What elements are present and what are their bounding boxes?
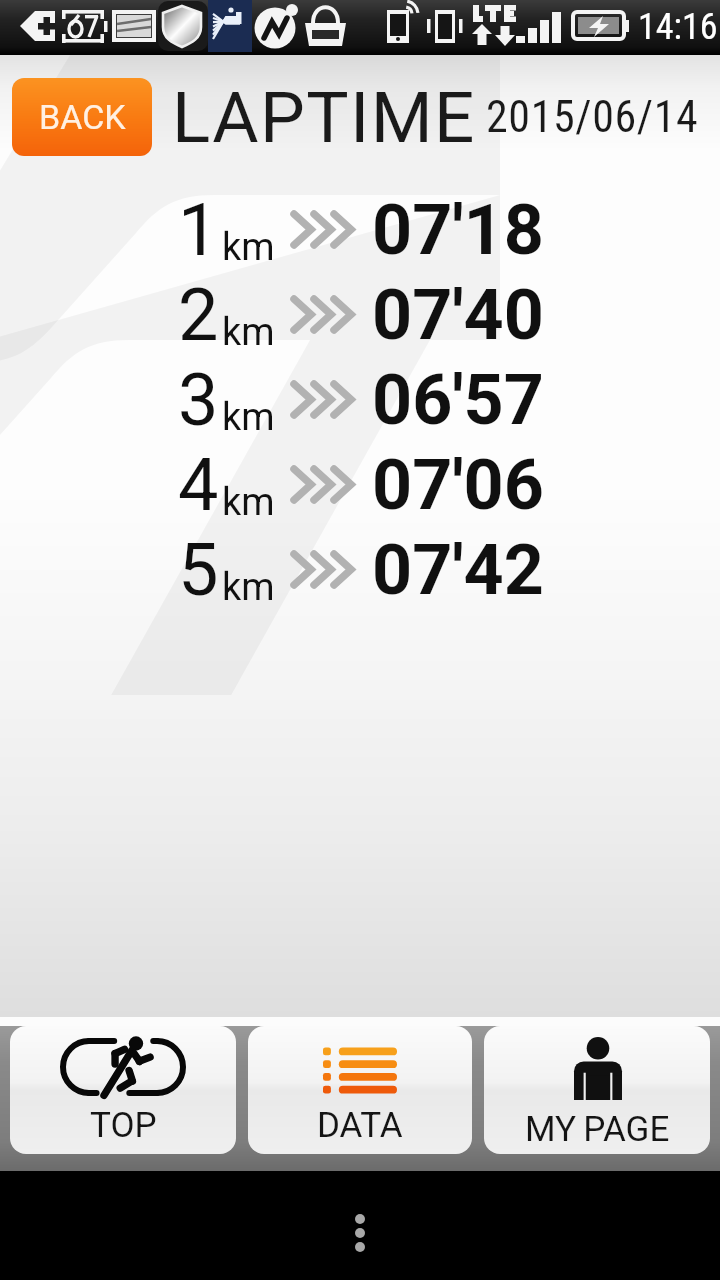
- staticText: BACK: [39, 97, 126, 137]
- staticText: 2015/06/14: [486, 91, 699, 143]
- staticText: 1: [178, 188, 219, 272]
- staticText: km: [222, 310, 275, 355]
- button[interactable]: MY PAGE: [484, 1026, 710, 1154]
- staticText: km: [222, 480, 275, 525]
- staticText: 07'06: [372, 444, 544, 526]
- button[interactable]: DATA: [248, 1026, 472, 1154]
- staticText: TOP: [90, 1105, 157, 1146]
- staticText: 07'40: [372, 274, 544, 356]
- button[interactable]: BACK: [12, 78, 152, 156]
- staticText: 06'57: [372, 359, 544, 441]
- staticText: km: [222, 225, 275, 270]
- staticText: km: [222, 565, 275, 610]
- button[interactable]: 3: [0, 357, 720, 442]
- button[interactable]: 2: [0, 272, 720, 357]
- staticText: 2: [178, 273, 219, 357]
- staticText: LAPTIME: [172, 76, 476, 159]
- staticText: 3: [178, 358, 219, 442]
- staticText: DATA: [317, 1105, 403, 1146]
- button[interactable]: 5: [0, 527, 720, 612]
- button[interactable]: 4: [0, 442, 720, 527]
- staticText: 4: [178, 443, 219, 527]
- staticText: 07'18: [372, 189, 544, 271]
- staticText: 14:16: [638, 6, 718, 48]
- button[interactable]: TOP: [10, 1026, 236, 1154]
- staticText: MY PAGE: [525, 1109, 670, 1150]
- button[interactable]: 1: [0, 187, 720, 272]
- button[interactable]: More options: [321, 1194, 399, 1272]
- staticText: 5: [178, 528, 219, 612]
- staticText: km: [222, 395, 275, 440]
- staticText: 07'42: [372, 529, 544, 611]
